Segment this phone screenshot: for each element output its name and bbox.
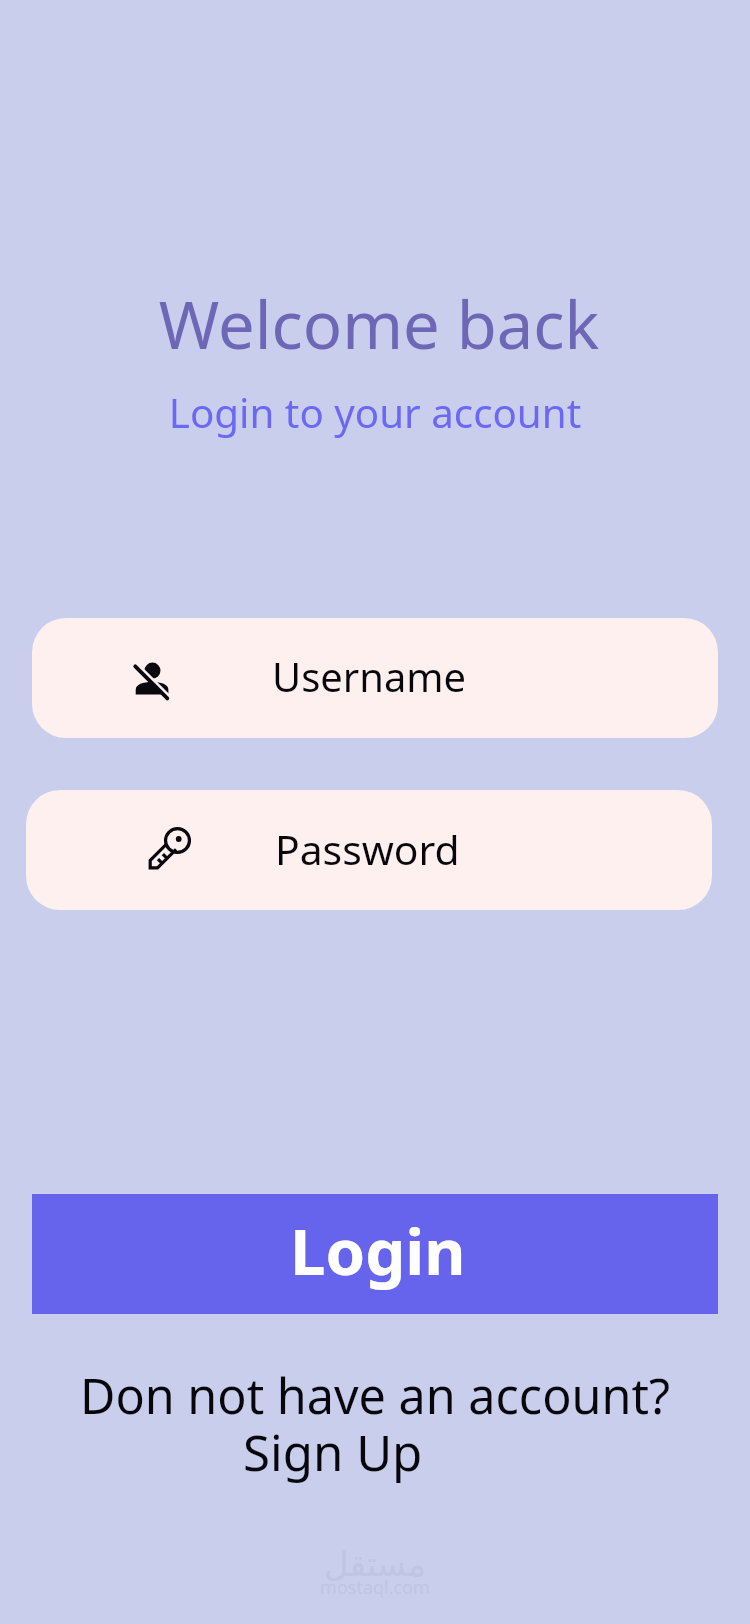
other: Password bbox=[148, 826, 192, 870]
button[interactable]: Don not have an account? bbox=[0, 1362, 750, 1492]
staticText: Password bbox=[275, 821, 460, 877]
staticText: Login to your account bbox=[0, 385, 750, 440]
other: Username bbox=[133, 662, 169, 698]
staticText: Username bbox=[272, 649, 467, 703]
staticText: Welcome back bbox=[4, 279, 750, 368]
staticText: Sign Up bbox=[243, 1418, 423, 1485]
button[interactable]: Username bbox=[32, 618, 718, 738]
staticText: Don not have an account? bbox=[0, 1362, 750, 1428]
staticText: Login bbox=[290, 1207, 466, 1293]
button[interactable]: Password bbox=[26, 790, 712, 910]
button[interactable]: Login bbox=[32, 1194, 718, 1314]
